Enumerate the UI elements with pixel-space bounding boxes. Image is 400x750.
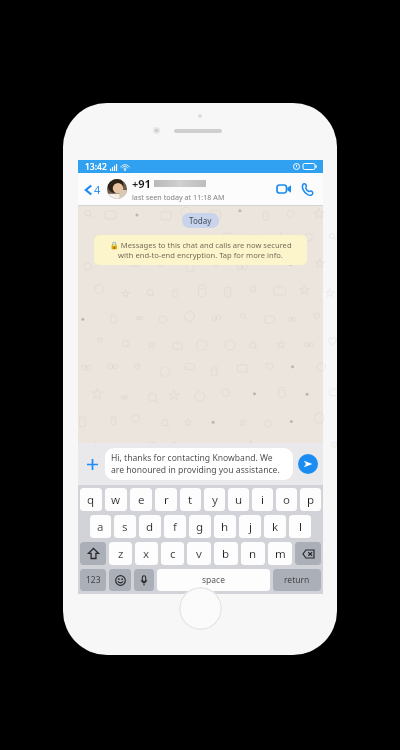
button[interactable]: m bbox=[268, 542, 292, 565]
button[interactable]: y bbox=[204, 488, 225, 511]
staticText: e bbox=[138, 492, 145, 508]
button[interactable]: t bbox=[180, 488, 201, 511]
staticText: Today bbox=[189, 215, 212, 226]
button[interactable]: w bbox=[105, 488, 127, 511]
staticText: l bbox=[299, 519, 302, 535]
button[interactable]: Shift bbox=[80, 542, 106, 565]
staticText: h bbox=[221, 519, 229, 535]
staticText: i bbox=[261, 492, 264, 508]
button[interactable]: Dictate bbox=[134, 569, 154, 591]
staticText: q bbox=[87, 492, 95, 508]
staticText: p bbox=[307, 492, 315, 508]
staticText: k bbox=[272, 519, 279, 535]
button[interactable]: Voice call bbox=[297, 179, 318, 200]
button[interactable]: Attach bbox=[83, 455, 102, 474]
button[interactable]: Video call bbox=[273, 180, 295, 198]
button[interactable]: Contact photo bbox=[107, 179, 127, 199]
staticText: g bbox=[196, 519, 204, 535]
staticText: 4 bbox=[94, 182, 101, 197]
button[interactable]: g bbox=[189, 515, 211, 538]
button[interactable]: h bbox=[214, 515, 236, 538]
button[interactable]: u bbox=[228, 488, 249, 511]
staticText: a bbox=[97, 519, 104, 535]
button[interactable]: o bbox=[276, 488, 297, 511]
button[interactable]: c bbox=[161, 542, 184, 565]
button[interactable]: l bbox=[289, 515, 311, 538]
button[interactable]: Today bbox=[182, 213, 219, 228]
staticText: y bbox=[212, 492, 218, 508]
staticText: t bbox=[188, 492, 193, 508]
staticText: 123 bbox=[86, 574, 101, 586]
staticText: d bbox=[146, 519, 154, 535]
button[interactable]: k bbox=[264, 515, 286, 538]
button[interactable]: f bbox=[164, 515, 186, 538]
staticText: m bbox=[275, 546, 286, 562]
staticText: 13:42 bbox=[85, 161, 107, 173]
button[interactable]: j bbox=[239, 515, 261, 538]
button[interactable]: s bbox=[114, 515, 136, 538]
button[interactable]: d bbox=[139, 515, 161, 538]
staticText: n bbox=[249, 546, 257, 562]
button[interactable]: q bbox=[80, 488, 102, 511]
button[interactable]: Hi, thanks for contacting Knowband. We a… bbox=[105, 448, 293, 480]
button[interactable]: Backspace bbox=[295, 542, 321, 565]
staticText: o bbox=[283, 492, 290, 508]
button[interactable]: Numbers bbox=[80, 569, 106, 591]
staticText: x bbox=[143, 546, 150, 562]
button[interactable]: a bbox=[90, 515, 111, 538]
button[interactable]: v bbox=[187, 542, 211, 565]
button[interactable]: b bbox=[214, 542, 238, 565]
button[interactable]: Emoji bbox=[109, 569, 131, 591]
staticText: w bbox=[111, 492, 121, 508]
staticText: r bbox=[164, 492, 169, 508]
staticText: c bbox=[170, 546, 176, 562]
button[interactable]: Home bbox=[179, 587, 222, 630]
button[interactable]: p bbox=[300, 488, 321, 511]
staticText: return bbox=[284, 574, 310, 586]
button[interactable]: r bbox=[155, 488, 177, 511]
staticText: j bbox=[249, 519, 252, 535]
staticText: f bbox=[173, 519, 177, 535]
staticText: z bbox=[118, 546, 124, 562]
staticText: b bbox=[222, 546, 230, 562]
button[interactable]: e bbox=[130, 488, 152, 511]
button[interactable]: Back, 4 unread bbox=[83, 178, 103, 201]
button[interactable]: Send bbox=[298, 454, 318, 474]
staticText: last seen today at 11:18 AM bbox=[132, 192, 225, 202]
staticText: space bbox=[202, 574, 225, 586]
button[interactable]: z bbox=[109, 542, 132, 565]
staticText: Hi, thanks for contacting Knowband. We a… bbox=[111, 452, 287, 476]
staticText: 🔒 Messages to this chat and calls are no… bbox=[101, 240, 300, 260]
button[interactable]: i bbox=[252, 488, 273, 511]
staticText: s bbox=[122, 519, 128, 535]
button[interactable]: return bbox=[273, 569, 321, 591]
staticText: u bbox=[235, 492, 243, 508]
button[interactable]: n bbox=[241, 542, 265, 565]
button[interactable]: x bbox=[135, 542, 158, 565]
staticText: +91 bbox=[132, 176, 151, 191]
staticText: v bbox=[196, 546, 202, 562]
button[interactable]: space bbox=[157, 569, 270, 591]
button[interactable]: 🔒 Messages to this chat and calls are no… bbox=[94, 235, 307, 265]
